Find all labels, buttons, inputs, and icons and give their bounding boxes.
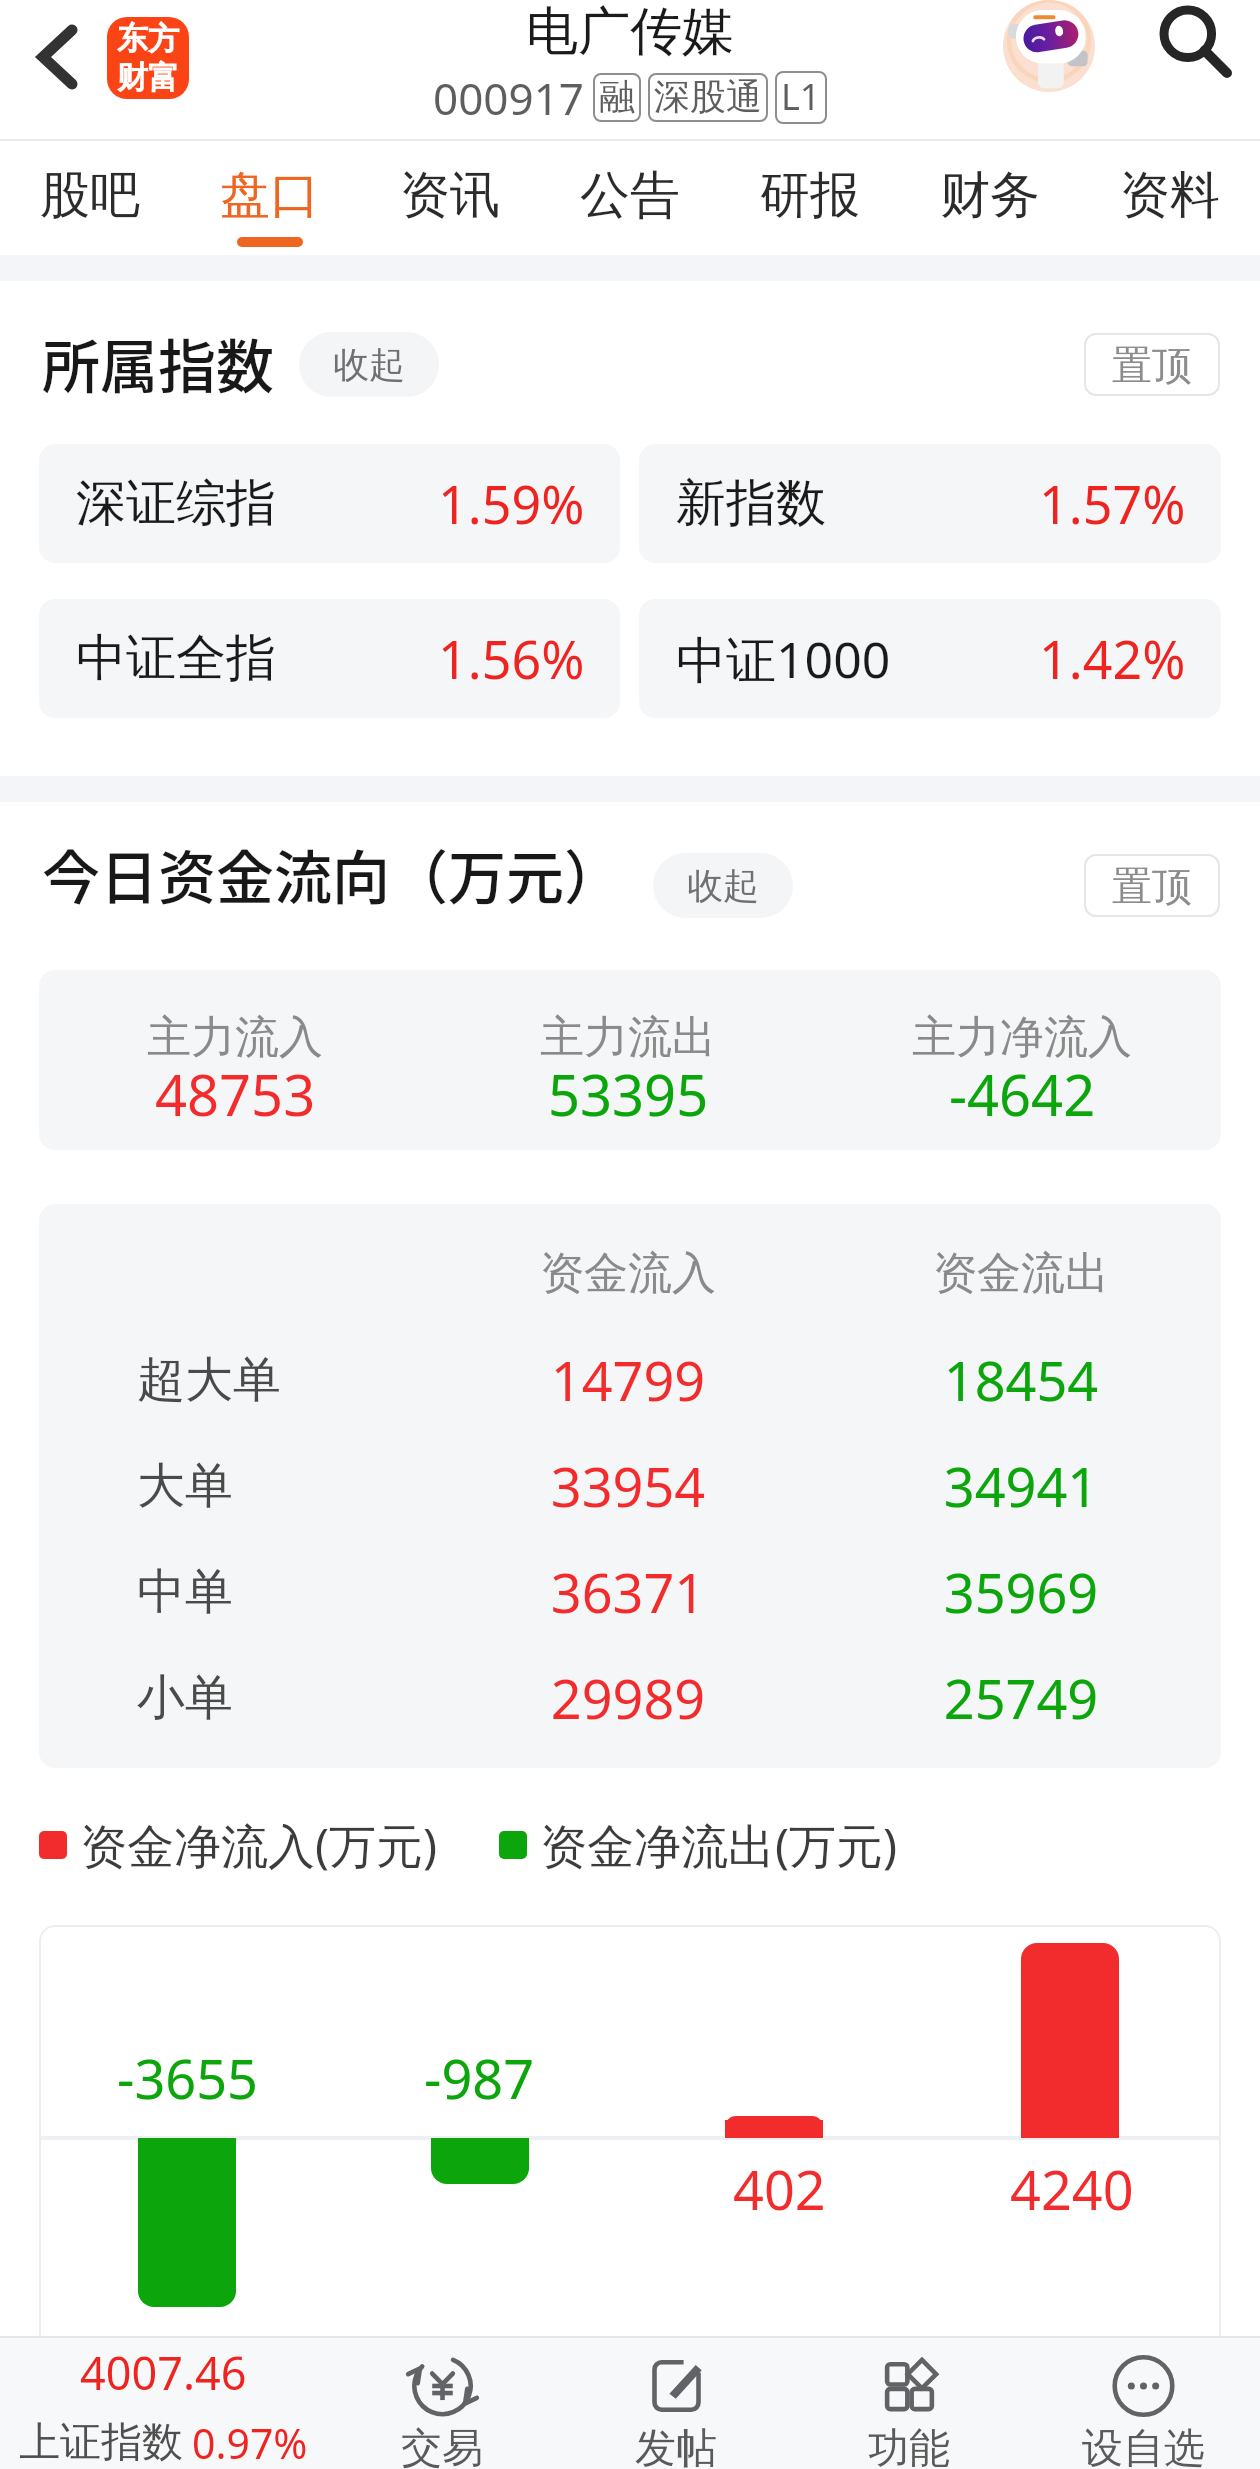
button[interactable]: 置顶 bbox=[1084, 854, 1220, 917]
staticText: 000917 bbox=[433, 68, 585, 126]
staticText: 中证全指 bbox=[76, 627, 276, 690]
staticText: 设自选 bbox=[1082, 2423, 1205, 2469]
staticText: 14799 bbox=[389, 1343, 867, 1417]
button[interactable]: 设自选 bbox=[1026, 2338, 1260, 2469]
staticText: 主力净流入 bbox=[912, 1010, 1132, 1065]
staticText: 置顶 bbox=[1112, 340, 1192, 390]
button[interactable]: 交易 bbox=[325, 2338, 559, 2469]
staticText: 主力流出 bbox=[540, 1010, 716, 1065]
staticText: 大单 bbox=[137, 1456, 389, 1516]
staticText: 今日资金流向（万元） bbox=[42, 832, 623, 912]
button[interactable]: 4007.46 bbox=[0, 2338, 325, 2469]
staticText: 1.42% bbox=[1039, 623, 1186, 694]
button[interactable]: 发帖 bbox=[559, 2338, 793, 2469]
staticText: 上证指数 bbox=[19, 2417, 183, 2469]
button[interactable]: 主力净流入 bbox=[825, 1010, 1219, 1141]
staticText: L1 bbox=[781, 72, 821, 121]
staticText: 融 bbox=[599, 74, 635, 119]
staticText: 35969 bbox=[867, 1555, 1175, 1629]
button[interactable]: 置顶 bbox=[1084, 333, 1220, 396]
staticText: 中证1000 bbox=[676, 625, 891, 693]
staticText: 1.57% bbox=[1039, 468, 1186, 539]
staticText: -987 bbox=[424, 2041, 535, 2115]
staticText: 交易 bbox=[401, 2423, 483, 2469]
staticText: 财富 bbox=[117, 58, 179, 97]
button[interactable]: East Money logo bbox=[107, 17, 189, 99]
button[interactable]: 收起 bbox=[299, 332, 439, 397]
staticText: 资金流出 bbox=[867, 1246, 1175, 1301]
button[interactable]: 盘口 bbox=[180, 127, 360, 255]
button[interactable]: 深证综指 bbox=[39, 444, 620, 563]
staticText: 中单 bbox=[137, 1562, 389, 1622]
button[interactable]: 中证全指 bbox=[39, 599, 620, 718]
button[interactable]: Search bbox=[1145, 0, 1245, 100]
staticText: 资料 bbox=[1120, 164, 1220, 227]
staticText: 所属指数 bbox=[42, 321, 275, 401]
staticText: 财务 bbox=[940, 164, 1040, 227]
staticText: 小单 bbox=[137, 1668, 389, 1728]
button[interactable]: 主力流出 bbox=[431, 1010, 825, 1141]
staticText: 48753 bbox=[155, 1056, 316, 1132]
staticText: 收起 bbox=[687, 863, 759, 908]
staticText: 4007.46 bbox=[80, 2342, 247, 2403]
staticText: 置顶 bbox=[1112, 861, 1192, 911]
staticText: 股吧 bbox=[40, 164, 140, 227]
staticText: 主力流入 bbox=[147, 1010, 323, 1065]
staticText: 资讯 bbox=[400, 164, 500, 227]
staticText: 1.56% bbox=[438, 623, 585, 694]
staticText: 25749 bbox=[867, 1661, 1175, 1735]
staticText: 53395 bbox=[548, 1056, 709, 1132]
button[interactable]: 资讯 bbox=[360, 127, 540, 255]
staticText: 0.97% bbox=[192, 2415, 308, 2469]
button[interactable]: 资料 bbox=[1080, 127, 1260, 255]
staticText: 研报 bbox=[760, 164, 860, 227]
staticText: 33954 bbox=[389, 1449, 867, 1523]
button[interactable]: 功能 bbox=[792, 2338, 1026, 2469]
staticText: 34941 bbox=[867, 1449, 1175, 1523]
staticText: 公告 bbox=[580, 164, 680, 227]
staticText: 资金净流入(万元) bbox=[80, 1813, 438, 1877]
button[interactable]: 大单 bbox=[39, 1433, 1221, 1539]
button[interactable]: 中单 bbox=[39, 1539, 1221, 1645]
staticText: 收起 bbox=[333, 342, 405, 387]
button[interactable]: 超大单 bbox=[39, 1327, 1221, 1433]
button[interactable]: 股吧 bbox=[0, 127, 180, 255]
staticText: 29989 bbox=[389, 1661, 867, 1735]
button[interactable]: 研报 bbox=[720, 127, 900, 255]
button[interactable]: 财务 bbox=[900, 127, 1080, 255]
staticText: 发帖 bbox=[635, 2423, 717, 2469]
staticText: 盘口 bbox=[220, 164, 320, 227]
staticText: 深证综指 bbox=[76, 472, 276, 535]
staticText: 超大单 bbox=[137, 1350, 389, 1410]
staticText: 1.59% bbox=[438, 468, 585, 539]
staticText: 深股通 bbox=[654, 74, 762, 119]
staticText: 新指数 bbox=[676, 472, 826, 535]
staticText: 36371 bbox=[389, 1555, 867, 1629]
staticText: 402 bbox=[733, 2152, 826, 2226]
staticText: 资金净流出(万元) bbox=[540, 1813, 898, 1877]
button[interactable]: 收起 bbox=[653, 853, 793, 918]
staticText: 电广传媒 bbox=[526, 0, 734, 65]
staticText: 18454 bbox=[867, 1343, 1175, 1417]
button[interactable]: 中证1000 bbox=[639, 599, 1221, 718]
staticText: 东方 bbox=[117, 19, 179, 58]
button[interactable]: Assistant bbox=[1003, 0, 1095, 92]
staticText: -4642 bbox=[949, 1056, 1096, 1132]
button[interactable]: 公告 bbox=[540, 127, 720, 255]
button[interactable]: 小单 bbox=[39, 1645, 1221, 1751]
button[interactable]: 主力流入 bbox=[39, 1010, 431, 1141]
staticText: 资金流入 bbox=[389, 1246, 867, 1301]
button[interactable]: 新指数 bbox=[639, 444, 1221, 563]
staticText: 4240 bbox=[1010, 2152, 1134, 2226]
button[interactable]: Back bbox=[7, 2, 107, 112]
staticText: -3655 bbox=[117, 2041, 258, 2115]
staticText: 功能 bbox=[868, 2423, 950, 2469]
